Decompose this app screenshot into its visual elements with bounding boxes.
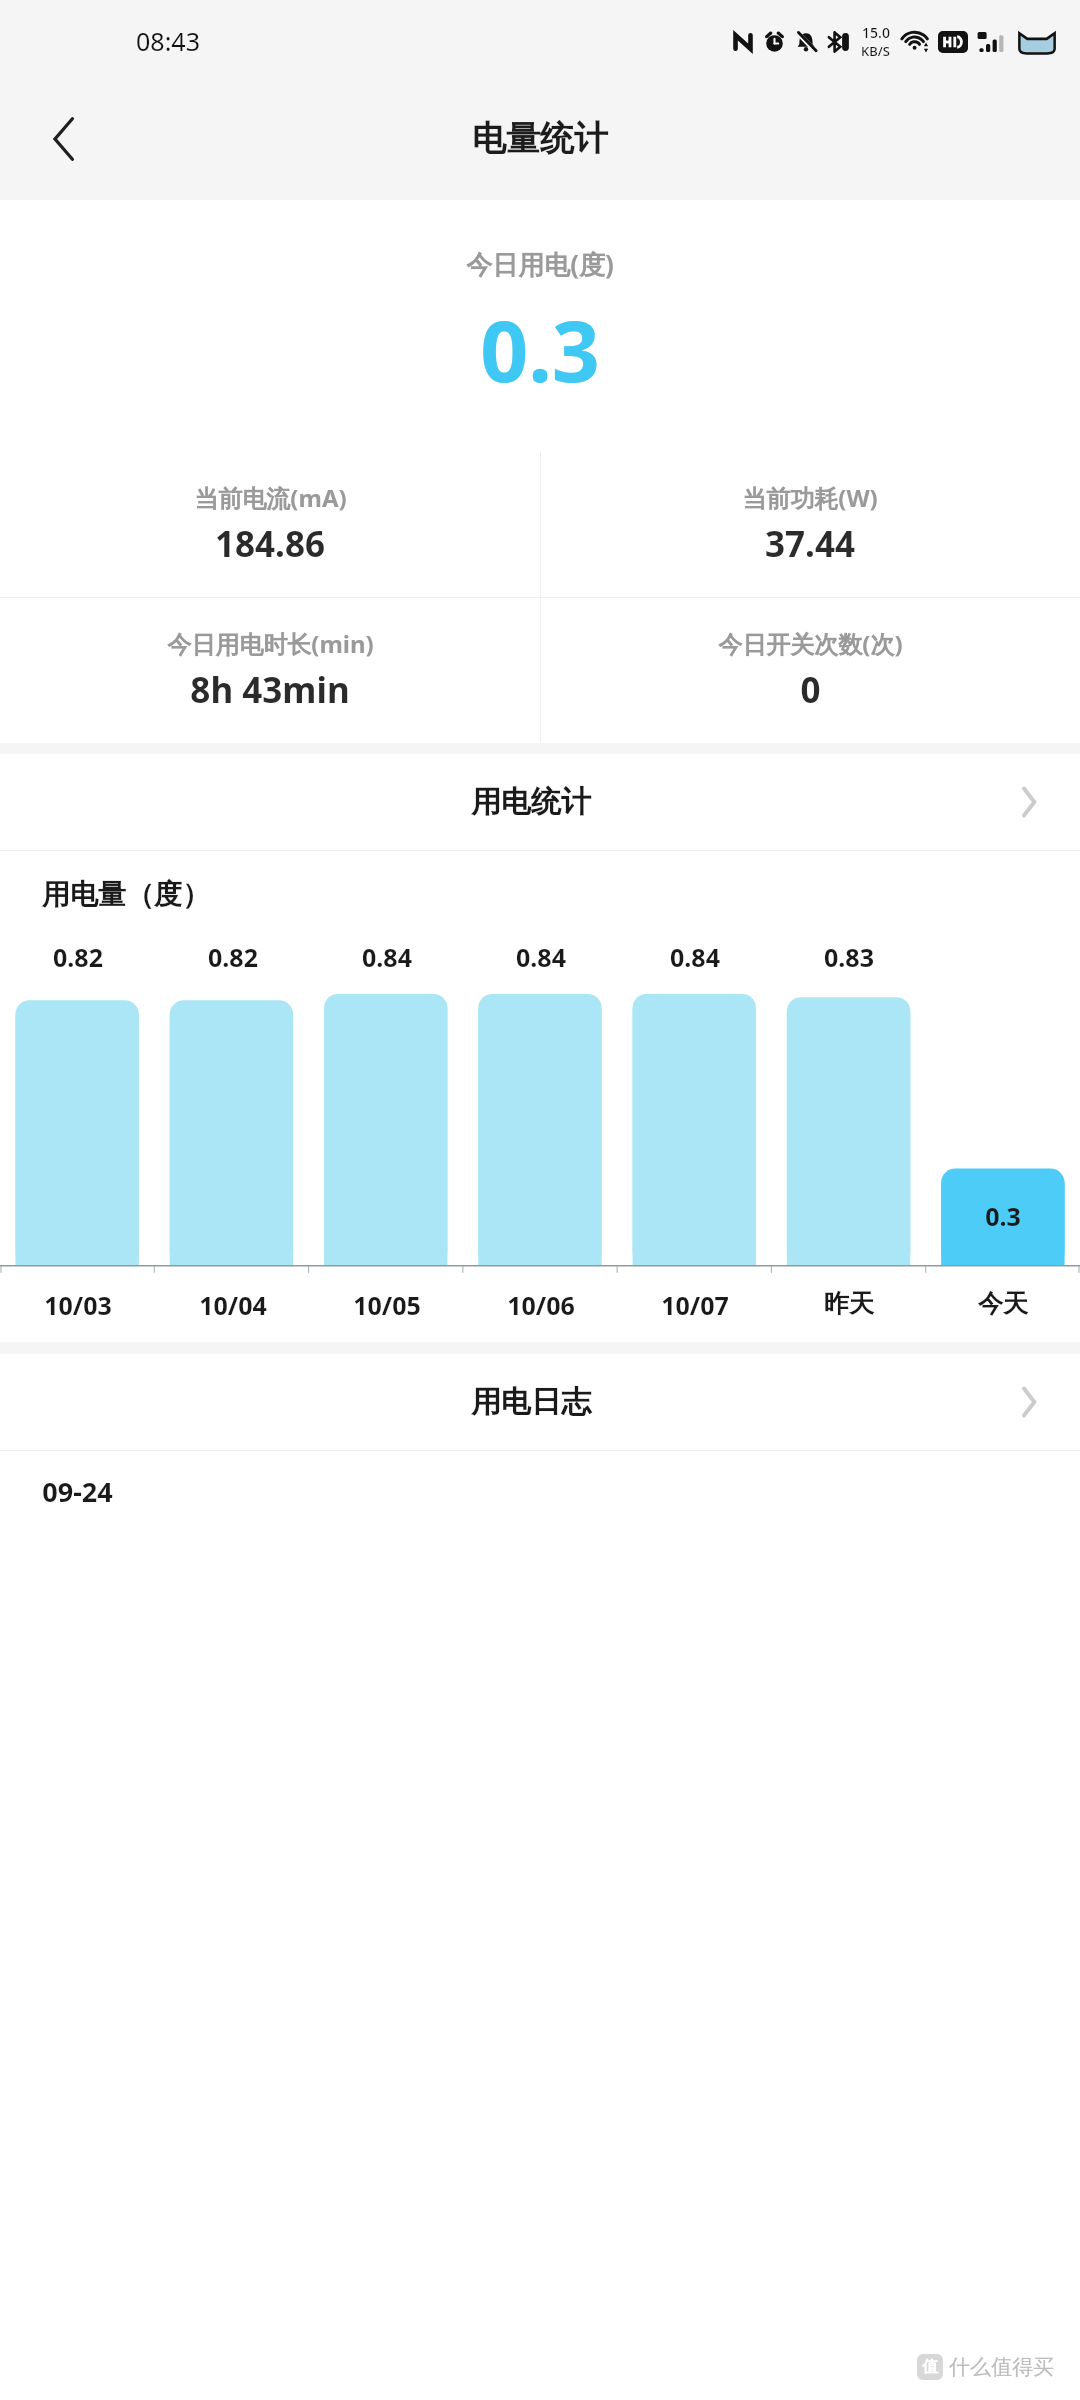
staticText: 当前功耗(W) bbox=[742, 481, 878, 514]
button[interactable]: 用电统计 bbox=[0, 754, 1080, 850]
staticText: 10/05 bbox=[353, 1288, 421, 1322]
staticText: KB/S bbox=[861, 42, 890, 60]
staticText: 0 bbox=[800, 666, 821, 714]
staticText: 15.0 bbox=[862, 23, 890, 42]
staticText: 08:43 bbox=[136, 24, 200, 58]
staticText: 用电统计 bbox=[42, 783, 1020, 821]
staticText: 09-24 bbox=[42, 1473, 113, 1510]
staticText: 今日开关次数(次) bbox=[718, 627, 903, 660]
button[interactable]: 09-24 bbox=[0, 1451, 1080, 1531]
staticText: 0.3 bbox=[480, 292, 600, 406]
staticText: 0.84 bbox=[362, 940, 412, 974]
button[interactable]: 当前功耗(W) bbox=[540, 452, 1080, 597]
staticText: 10/06 bbox=[507, 1288, 575, 1322]
staticText: 用电日志 bbox=[42, 1383, 1020, 1421]
staticText: 今天 bbox=[978, 1288, 1028, 1319]
staticText: 0.3 bbox=[985, 1199, 1021, 1233]
staticText: 当前电流(mA) bbox=[194, 481, 347, 514]
staticText: 184.86 bbox=[215, 520, 325, 568]
staticText: 今日用电时长(min) bbox=[167, 627, 374, 660]
staticText: 10/04 bbox=[199, 1288, 267, 1322]
staticText: 10/07 bbox=[661, 1288, 729, 1322]
staticText: 0.83 bbox=[824, 940, 874, 974]
staticText: 0.84 bbox=[670, 940, 720, 974]
staticText: 8h 43min bbox=[190, 666, 350, 714]
staticText: 37.44 bbox=[765, 520, 855, 568]
button[interactable]: 今日开关次数(次) bbox=[540, 598, 1080, 743]
button[interactable]: 当前电流(mA) bbox=[0, 452, 540, 597]
button[interactable]: 用电日志 bbox=[0, 1354, 1080, 1450]
staticText: 什么值得买 bbox=[949, 2354, 1054, 2380]
staticText: 0.82 bbox=[208, 940, 258, 974]
staticText: 0.84 bbox=[516, 940, 566, 974]
staticText: 昨天 bbox=[824, 1288, 874, 1319]
staticText: 值 bbox=[922, 2357, 938, 2377]
button[interactable]: 返回 bbox=[36, 111, 92, 167]
staticText: 0.82 bbox=[53, 940, 103, 974]
button[interactable]: 今日用电时长(min) bbox=[0, 598, 540, 743]
staticText: 10/03 bbox=[44, 1288, 112, 1322]
staticText: 电量统计 bbox=[472, 117, 608, 160]
staticText: 今日用电(度) bbox=[466, 246, 614, 282]
staticText: 用电量（度） bbox=[42, 877, 210, 912]
